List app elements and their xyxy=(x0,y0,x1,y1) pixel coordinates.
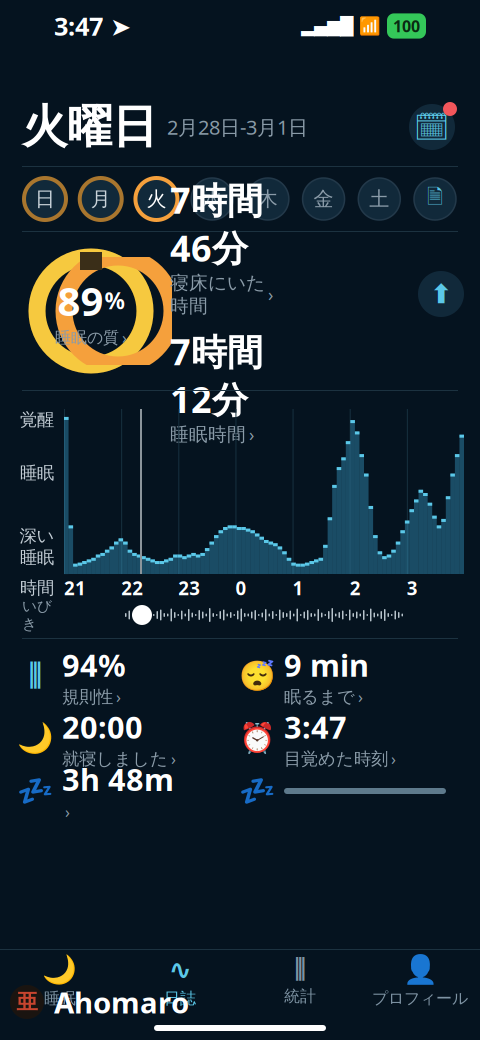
staticText: 木 xyxy=(258,187,278,211)
button[interactable]: 水 xyxy=(189,176,235,222)
staticText: 2月28日-3月1日 xyxy=(157,114,308,140)
staticText: 💤 xyxy=(238,774,275,808)
staticText: 睡眠 xyxy=(20,547,54,568)
staticText: 火曜日 xyxy=(22,99,157,155)
staticText: 💤 xyxy=(16,774,53,808)
button[interactable]: 👤 xyxy=(360,955,480,1007)
button[interactable]: 月 xyxy=(78,176,124,222)
staticText: 統計 xyxy=(284,986,316,1006)
staticText: › xyxy=(268,283,273,306)
button[interactable]: ⦀ xyxy=(240,955,360,1007)
staticText: 🗎 xyxy=(427,182,443,215)
staticText: 日誌 xyxy=(164,989,196,1008)
staticText: › xyxy=(65,801,70,822)
button[interactable]: カレンダー xyxy=(406,101,458,153)
staticText: 🗓 xyxy=(414,111,450,143)
button[interactable]: 共有 xyxy=(416,269,466,319)
staticText: 3:47 xyxy=(284,706,347,747)
staticText: › xyxy=(116,686,121,707)
staticText: 目覚めた時刻 xyxy=(284,748,388,769)
staticText: 睡眠時間 xyxy=(170,423,246,446)
button[interactable]: 🌙 xyxy=(18,706,240,769)
staticText: 覚醒 xyxy=(20,409,54,430)
staticText: ⏰ xyxy=(238,721,275,755)
staticText: 👤 xyxy=(402,954,437,986)
staticText: 22 xyxy=(121,576,143,600)
staticText: 94% xyxy=(62,644,126,685)
staticText: 火 xyxy=(146,187,166,211)
staticText: 日 xyxy=(35,187,55,211)
staticText: 寝床にいた時間 xyxy=(170,272,265,317)
staticText: 1 xyxy=(293,576,304,600)
staticText: 水 xyxy=(202,187,222,211)
staticText: プロフィール xyxy=(372,989,468,1008)
button[interactable]: 火 xyxy=(133,176,179,222)
staticText: 100 xyxy=(393,15,420,37)
staticText: › xyxy=(122,327,127,348)
staticText: Ahomaro xyxy=(54,982,189,1021)
button[interactable]: 🗎 xyxy=(412,176,458,222)
staticText: 📶 xyxy=(359,16,381,36)
staticText: 23 xyxy=(178,576,200,600)
staticText: ⦀ xyxy=(294,956,306,983)
button[interactable]: 木 xyxy=(245,176,291,222)
staticText: 亜 xyxy=(16,989,37,1015)
staticText: › xyxy=(249,423,254,446)
staticText: ▂▄▆█ xyxy=(301,16,353,36)
staticText: 🌙 xyxy=(16,721,53,755)
button[interactable]: 金 xyxy=(301,176,347,222)
staticText: 7時間 12分 xyxy=(170,327,263,423)
staticText: 就寝しました xyxy=(62,748,168,769)
staticText: 眠るまで xyxy=(284,686,355,707)
staticText: いびき xyxy=(22,597,52,633)
button[interactable]: 💤 xyxy=(18,759,240,823)
staticText: 3h 48m xyxy=(62,759,174,799)
staticText: 3:47 ➤ xyxy=(54,9,131,43)
button[interactable]: 7時間 46分 xyxy=(170,176,286,317)
staticText: ⦀ xyxy=(28,660,42,692)
button[interactable]: 7時間 12分 xyxy=(170,327,286,446)
staticText: ⬆ xyxy=(430,279,452,309)
staticText: 20:00 xyxy=(62,706,143,747)
button[interactable]: 😴 xyxy=(240,644,462,707)
staticText: 睡眠 xyxy=(44,989,76,1008)
staticText: 89 xyxy=(57,274,103,327)
staticText: 😴 xyxy=(238,659,275,693)
staticText: 睡眠の質 xyxy=(55,328,119,347)
staticText: › xyxy=(171,748,176,769)
staticText: 0 xyxy=(235,576,246,600)
staticText: 3 xyxy=(407,576,418,600)
button[interactable]: 日 xyxy=(22,176,68,222)
staticText: › xyxy=(358,686,363,707)
button[interactable]: ∿ xyxy=(120,955,240,1007)
button[interactable]: ⦀ xyxy=(18,644,240,707)
staticText: 21 xyxy=(64,576,86,600)
staticText: 金 xyxy=(314,187,334,211)
button[interactable]: 土 xyxy=(356,176,402,222)
staticText: 7時間 46分 xyxy=(170,176,263,271)
staticText: 時間 xyxy=(20,577,54,599)
staticText: % xyxy=(104,285,124,315)
staticText: › xyxy=(391,748,396,769)
staticText: 睡眠 xyxy=(20,462,54,484)
staticText: 9 min xyxy=(284,644,369,685)
staticText: ∿ xyxy=(168,954,191,986)
staticText: 土 xyxy=(369,187,389,211)
staticText: 規則性 xyxy=(62,686,113,707)
staticText: 月 xyxy=(91,187,111,211)
button[interactable]: 🌙 xyxy=(0,955,120,1007)
staticText: 🌙 xyxy=(42,954,77,986)
button[interactable]: ⏰ xyxy=(240,706,462,769)
staticText: 深い xyxy=(19,525,54,547)
staticText: 2 xyxy=(350,576,361,600)
button[interactable]: 89 xyxy=(26,246,156,376)
